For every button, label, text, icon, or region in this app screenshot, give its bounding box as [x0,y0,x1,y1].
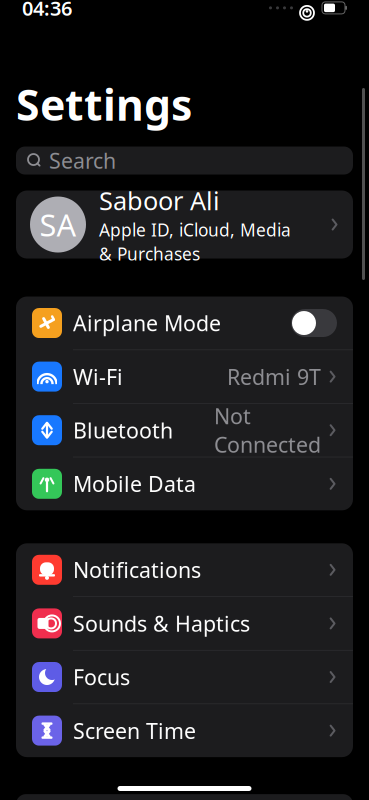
staticText: Mobile Data [73,470,196,498]
staticText: & Purchases [99,242,200,265]
staticText: Redmi 9T [227,362,321,391]
button[interactable]: Mobile Data [16,457,353,510]
staticText: Search [49,146,116,175]
staticText: Saboor Ali [99,184,220,217]
staticText: Airplane Mode [73,309,221,337]
button[interactable]: Airplane Mode [16,296,353,350]
staticText: SA [39,204,76,245]
staticText: Wi-Fi [73,362,123,391]
staticText: Settings [16,76,192,133]
button[interactable]: Search [16,146,353,174]
staticText: Bluetooth [73,416,173,444]
button[interactable]: Wi-Fi [16,350,353,404]
button[interactable]: Focus [16,650,353,704]
staticText: Screen Time [73,716,196,745]
button[interactable]: Notifications [16,543,353,597]
staticText: Focus [73,663,130,691]
button[interactable]: Bluetooth [16,404,353,457]
button[interactable]: Screen Time [16,704,353,757]
staticText: Not Connected [214,402,321,459]
staticText: 04:36 [22,0,72,21]
button[interactable]: Sounds & Haptics [16,597,353,650]
button[interactable]: SA [16,190,353,258]
staticText: Sounds & Haptics [73,609,250,638]
staticText: Apple ID, iCloud, Media [99,218,291,241]
staticText: Notifications [73,556,201,584]
